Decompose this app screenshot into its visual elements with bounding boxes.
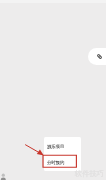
staticText: 软件技巧 bbox=[75, 169, 104, 178]
button[interactable]: 源乐项目 bbox=[44, 139, 81, 154]
button[interactable]: Link bbox=[88, 48, 106, 65]
staticText: 分时预约 bbox=[47, 160, 65, 165]
staticText: 源乐项目 bbox=[47, 144, 65, 149]
button[interactable]: 分时预约 bbox=[44, 155, 81, 170]
